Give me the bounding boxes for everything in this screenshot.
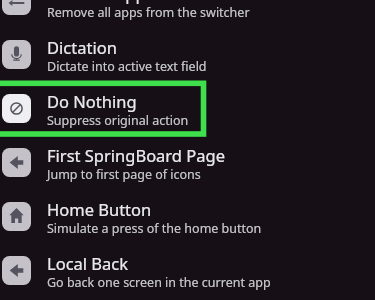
staticText: Dictate into active text field [47, 58, 207, 75]
staticText: Go back one screen in the current app [47, 274, 271, 291]
button[interactable]: Local Back [0, 243, 375, 297]
staticText: Home Button [47, 198, 152, 220]
staticText: Dictation [47, 36, 117, 58]
staticText: Suppress original action [47, 112, 189, 129]
button[interactable]: Clear All Apps [0, 0, 375, 27]
button[interactable]: Do Nothing [0, 81, 375, 135]
staticText: Clear All Apps [47, 0, 154, 4]
staticText: First SpringBoard Page [47, 144, 225, 166]
staticText: Remove all apps from the switcher [47, 4, 250, 21]
staticText: Local Back [47, 252, 129, 274]
button[interactable]: Home Button [0, 189, 375, 243]
button[interactable]: First SpringBoard Page [0, 135, 375, 189]
staticText: Jump to first page of icons [47, 166, 201, 183]
button[interactable]: Dictation [0, 27, 375, 81]
staticText: Simulate a press of the home button [47, 220, 262, 237]
staticText: Do Nothing [47, 90, 137, 112]
